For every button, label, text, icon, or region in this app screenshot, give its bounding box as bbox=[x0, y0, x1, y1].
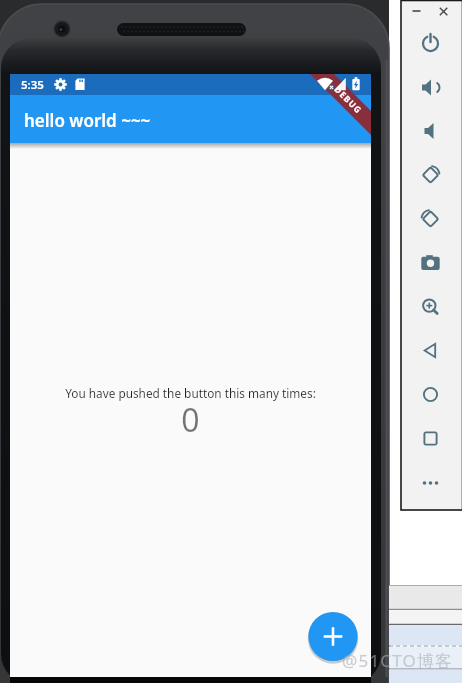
staticText: hello world ~~~ bbox=[24, 109, 151, 132]
button[interactable] bbox=[402, 2, 462, 509]
staticText: 5:35 bbox=[21, 77, 44, 93]
button[interactable] bbox=[308, 612, 358, 662]
staticText: 0 bbox=[181, 398, 200, 442]
staticText: DEBUG bbox=[332, 84, 365, 117]
staticText: You have pushed the button this many tim… bbox=[65, 385, 316, 401]
staticText: @51CTO博客 bbox=[342, 649, 454, 672]
